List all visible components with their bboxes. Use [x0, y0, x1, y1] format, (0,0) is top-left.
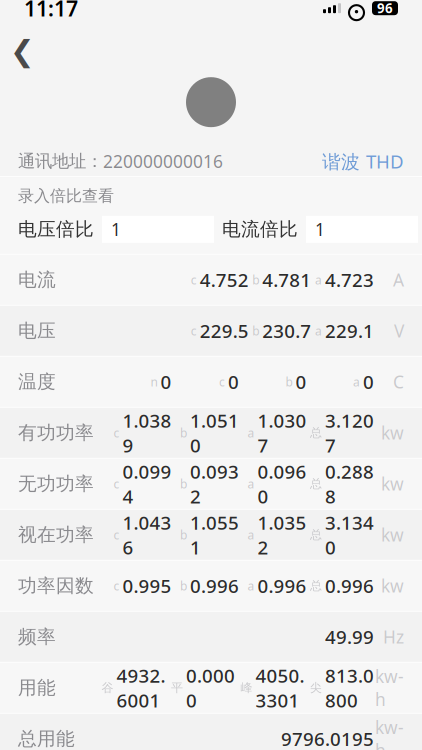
staticText: b [180, 527, 187, 543]
staticText: kw [381, 523, 404, 546]
staticText: 总用能 [18, 727, 75, 750]
staticText: 0 [228, 369, 239, 394]
button[interactable]: 1 [306, 216, 418, 243]
staticText: 有功功率 [18, 421, 94, 444]
staticText: 0.995 [122, 573, 171, 598]
staticText: Hz [383, 625, 404, 648]
staticText: c [113, 578, 119, 594]
staticText: kw [381, 421, 404, 444]
staticText: c [113, 527, 119, 543]
staticText: 0.996 [257, 573, 306, 598]
staticText: a [353, 374, 360, 390]
staticText: 230.7 [262, 318, 311, 343]
staticText: 电流 [18, 268, 56, 291]
staticText: 0 [363, 369, 374, 394]
staticText: 用能 [18, 676, 56, 699]
staticText: 频率 [18, 625, 56, 648]
staticText: 3.1207 [325, 408, 374, 458]
staticText: a [247, 527, 254, 543]
staticText: c [113, 476, 119, 492]
staticText: b [180, 425, 187, 441]
staticText: 0 [295, 369, 306, 394]
staticText: 平 [171, 680, 183, 695]
staticText: 无功功率 [18, 472, 94, 495]
staticText: 通讯地址： [18, 150, 103, 172]
staticText: 总 [310, 425, 322, 440]
staticText: 4.723 [325, 267, 374, 292]
staticText: b [180, 578, 187, 594]
staticText: 0.996 [325, 573, 374, 598]
button[interactable]: 谐波 THD [322, 149, 404, 174]
staticText: 总 [310, 527, 322, 542]
staticText: 229.1 [325, 318, 374, 343]
staticText: 229.5 [200, 318, 249, 343]
staticText: b [252, 272, 259, 288]
staticText: 电流倍比 [222, 218, 298, 241]
staticText: 1.0510 [190, 408, 239, 458]
staticText: kwh [375, 665, 404, 711]
staticText: a [247, 425, 254, 441]
staticText: 总 [310, 578, 322, 593]
staticText: ❮ [10, 34, 35, 68]
button[interactable]: Back [0, 30, 52, 72]
staticText: b [180, 476, 187, 492]
staticText: kwh [375, 716, 404, 750]
staticText: c [191, 323, 197, 339]
staticText: 录入倍比查看 [18, 186, 114, 206]
staticText: kw [381, 472, 404, 495]
staticText: 3.1340 [325, 510, 374, 560]
staticText: 9796.0195 [281, 726, 374, 750]
staticText: 1 [315, 218, 325, 241]
staticText: 视在功率 [18, 523, 94, 546]
staticText: 0.0932 [190, 459, 239, 509]
staticText: 220000000016 [103, 150, 223, 173]
staticText: 1.0352 [257, 510, 306, 560]
staticText: 1.0436 [122, 510, 171, 560]
staticText: 4932.6001 [116, 663, 165, 713]
staticText: 4.781 [262, 267, 311, 292]
staticText: 1.0307 [257, 408, 306, 458]
staticText: b [285, 374, 292, 390]
staticText: 49.99 [325, 624, 374, 649]
staticText: 813.0800 [325, 663, 374, 713]
staticText: 4.752 [200, 267, 249, 292]
staticText: n [150, 374, 157, 390]
staticText: 谐波 THD [322, 149, 404, 174]
staticText: b [252, 323, 259, 339]
staticText: c [191, 272, 197, 288]
staticText: 0.0000 [186, 663, 235, 713]
staticText: 1 [111, 218, 121, 241]
button[interactable]: 1 [102, 216, 214, 243]
staticText: A [393, 268, 404, 291]
staticText: a [315, 323, 322, 339]
staticText: 尖 [310, 680, 322, 695]
staticText: V [394, 319, 404, 342]
staticText: kw [381, 574, 404, 597]
staticText: a [315, 272, 322, 288]
staticText: c [113, 425, 119, 441]
staticText: a [247, 578, 254, 594]
staticText: 温度 [18, 370, 56, 393]
staticText: 11:17 [24, 0, 78, 22]
staticText: C [393, 370, 404, 393]
staticText: 0 [160, 369, 171, 394]
staticText: 0.0994 [122, 459, 171, 509]
staticText: 4050.3301 [255, 663, 304, 713]
staticText: a [247, 476, 254, 492]
staticText: 0.996 [190, 573, 239, 598]
staticText: c [219, 374, 225, 390]
staticText: 1.0389 [122, 408, 171, 458]
staticText: 功率因数 [18, 574, 94, 597]
staticText: 1.0551 [190, 510, 239, 560]
staticText: 总 [310, 476, 322, 491]
staticText: 谷 [101, 680, 113, 695]
staticText: 0.0960 [257, 459, 306, 509]
staticText: 峰 [240, 680, 252, 695]
staticText: 电压倍比 [18, 218, 94, 241]
staticText: 96 [377, 0, 393, 17]
staticText: 0.2888 [325, 459, 374, 509]
staticText: 电压 [18, 319, 56, 342]
